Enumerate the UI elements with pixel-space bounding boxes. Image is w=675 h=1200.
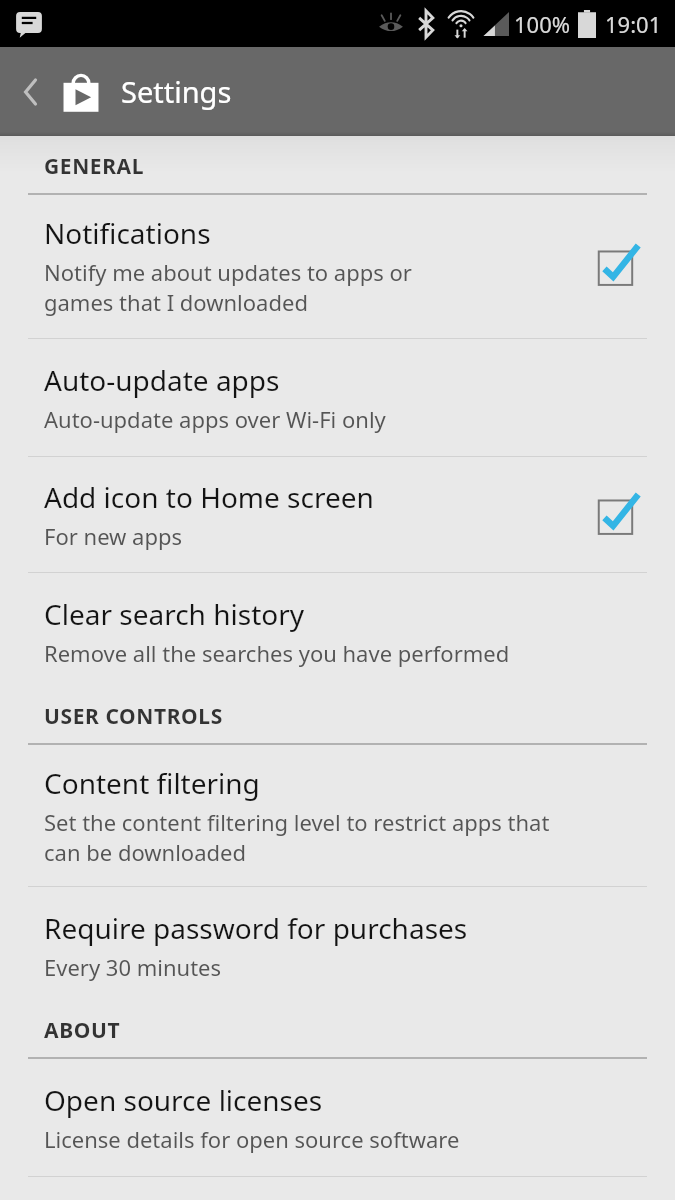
staticText: Notify me about updates to apps or games…	[44, 257, 412, 318]
staticText: USER CONTROLS	[44, 702, 223, 731]
staticText: ABOUT	[44, 1016, 121, 1045]
staticText: Set the content filtering level to restr…	[44, 807, 550, 868]
staticText: Every 30 minutes	[44, 952, 222, 982]
staticText: Require password for purchases	[44, 909, 468, 947]
staticText: License details for open source software	[44, 1124, 460, 1154]
staticText: 19:01	[605, 9, 662, 39]
staticText: Add icon to Home screen	[44, 478, 374, 516]
staticText: For new apps	[44, 521, 183, 551]
staticText: GENERAL	[44, 152, 145, 181]
staticText: Notifications	[44, 214, 211, 252]
staticText: Open source licenses	[44, 1081, 323, 1119]
button[interactable]: Toggle setting	[591, 487, 647, 543]
button[interactable]: Clear search history	[0, 573, 675, 686]
staticText: Auto-update apps	[44, 361, 280, 399]
button[interactable]: Open source licenses	[0, 1059, 675, 1176]
button[interactable]: Require password for purchases	[0, 887, 675, 1000]
staticText: Content filtering	[44, 764, 260, 802]
button[interactable]: Notifications	[0, 195, 675, 338]
staticText: 100%	[514, 9, 571, 39]
staticText: Settings	[121, 72, 232, 111]
button[interactable]: Navigate up	[8, 62, 54, 122]
button[interactable]: Toggle setting	[591, 238, 647, 294]
staticText: Clear search history	[44, 595, 305, 633]
button[interactable]: Auto-update apps	[0, 339, 675, 456]
staticText: Auto-update apps over Wi-Fi only	[44, 404, 386, 434]
staticText: Remove all the searches you have perform…	[44, 638, 510, 668]
button[interactable]: Add icon to Home screen	[0, 457, 675, 572]
button[interactable]: Content filtering	[0, 745, 675, 886]
